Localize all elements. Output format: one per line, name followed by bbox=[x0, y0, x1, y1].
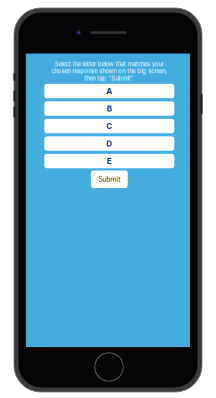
staticText: A bbox=[106, 86, 112, 96]
staticText: Select the letter below that matches you… bbox=[55, 61, 164, 68]
staticText: D bbox=[106, 139, 112, 148]
button[interactable]: D bbox=[44, 136, 174, 151]
staticText: Submit bbox=[98, 175, 120, 183]
button[interactable]: B bbox=[44, 101, 174, 116]
staticText: chosen response shown on the big screen, bbox=[51, 68, 167, 75]
staticText: C bbox=[106, 121, 112, 131]
staticText: B bbox=[107, 104, 112, 113]
button[interactable]: A bbox=[44, 84, 174, 98]
staticText: E bbox=[107, 156, 112, 166]
staticText: then tap “Submit”. bbox=[84, 75, 134, 82]
button[interactable]: E bbox=[44, 154, 174, 168]
button[interactable]: C bbox=[44, 119, 174, 133]
button[interactable]: Submit bbox=[91, 170, 128, 188]
